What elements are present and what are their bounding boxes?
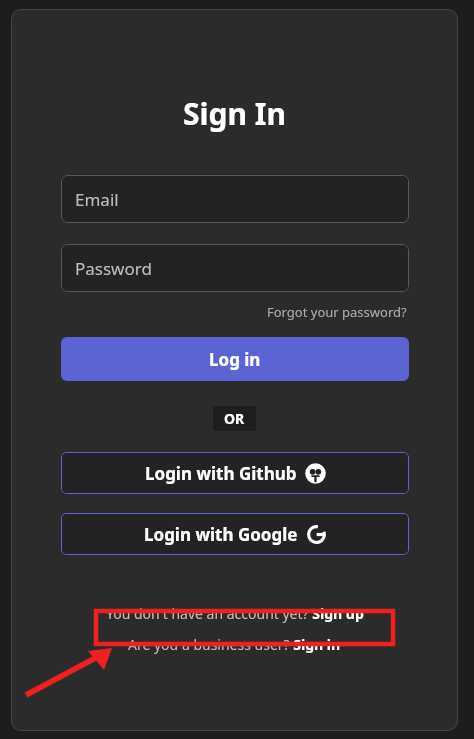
staticText: Password bbox=[75, 257, 152, 280]
button[interactable]: Log in bbox=[61, 337, 409, 381]
button[interactable]: Email bbox=[61, 175, 409, 223]
staticText: Log in bbox=[209, 348, 261, 371]
other: GitHub bbox=[306, 464, 325, 483]
button[interactable]: You don't have an account yet? Sign up bbox=[98, 599, 372, 628]
button[interactable]: Are you a business user? Sign in bbox=[120, 631, 349, 658]
staticText: You don't have an account yet? Sign up bbox=[106, 604, 364, 623]
button[interactable]: Login with Google bbox=[61, 513, 409, 555]
staticText: Are you a business user? Sign in bbox=[128, 635, 341, 654]
staticText: Login with Github bbox=[145, 462, 297, 485]
button[interactable]: Password bbox=[61, 244, 409, 292]
other: Google bbox=[307, 525, 326, 544]
staticText: Sign In bbox=[183, 93, 286, 134]
staticText: Forgot your password? bbox=[267, 303, 407, 321]
button[interactable]: Forgot your password? bbox=[265, 301, 409, 323]
button[interactable]: Login with Github bbox=[61, 452, 409, 494]
staticText: OR bbox=[224, 409, 245, 428]
staticText: Email bbox=[75, 188, 119, 211]
staticText: Login with Google bbox=[144, 523, 298, 546]
